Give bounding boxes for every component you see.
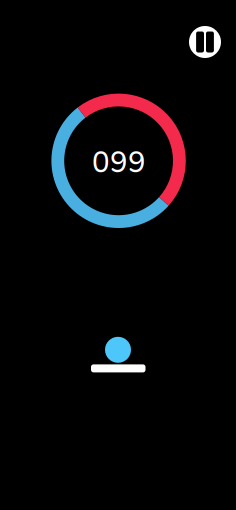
button[interactable]: Pause — [189, 26, 221, 58]
staticText: 099 — [92, 142, 146, 182]
